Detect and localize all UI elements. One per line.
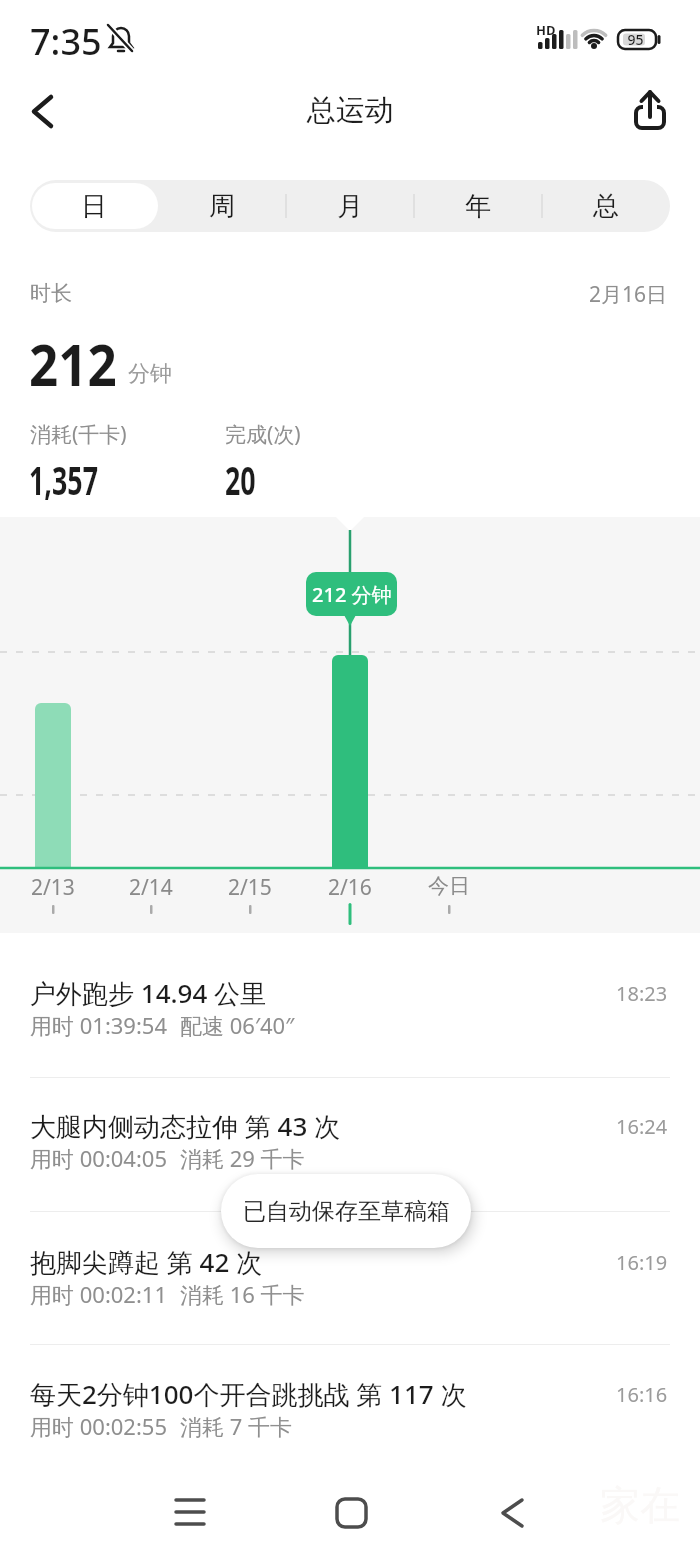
staticText: 总 [593,190,619,223]
button[interactable] [0,1066,700,1200]
button[interactable] [0,1202,700,1336]
staticText: 月 [337,190,363,223]
staticText: 已自动保存至草稿箱 [243,1197,450,1226]
staticText: 2月16日 [589,280,668,309]
staticText: 2/13 [31,873,75,902]
staticText: 总运动 [307,92,394,129]
staticText: 消耗 29 千卡 [180,1143,305,1173]
staticText: HD [536,21,556,39]
staticText: 16:19 [616,1249,668,1276]
staticText: 212 [29,324,117,403]
staticText: 16:24 [616,1113,668,1140]
button[interactable]: 年 [414,180,542,232]
staticText: 2/14 [129,873,173,902]
button[interactable] [0,933,700,1067]
staticText: 抱脚尖蹲起 第 42 次 [30,1244,263,1280]
staticText: 户外跑步 14.94 公里 [30,975,267,1011]
staticText: 分钟 [128,360,172,388]
button[interactable]: 总 [542,180,670,232]
button[interactable] [160,1480,220,1550]
button[interactable]: 日 [30,180,158,232]
button[interactable] [320,1480,380,1550]
staticText: 消耗 7 千卡 [180,1411,293,1441]
staticText: 大腿内侧动态拉伸 第 43 次 [30,1108,341,1144]
staticText: 16:16 [616,1381,668,1408]
button[interactable] [480,1480,540,1550]
staticText: 今日 [428,873,470,899]
staticText: 日 [81,190,107,223]
staticText: 212 分钟 [312,581,392,608]
staticText: 20 [225,452,256,506]
staticText: 消耗(千卡) [30,420,127,449]
staticText: 年 [465,190,491,223]
button[interactable] [20,85,70,140]
staticText: 1,357 [29,452,98,506]
staticText: 用时 00:02:11 [30,1279,168,1309]
button[interactable] [626,82,676,138]
staticText: 用时 00:02:55 [30,1411,168,1441]
staticText: 消耗 16 千卡 [180,1279,305,1309]
staticText: 家在 [600,1480,680,1530]
staticText: 18:23 [616,980,668,1007]
button[interactable]: 周 [158,180,286,232]
staticText: 用时 00:04:05 [30,1143,168,1173]
button[interactable]: 月 [286,180,414,232]
button[interactable] [0,1334,700,1468]
staticText: 时长 [30,280,72,306]
staticText: 2/15 [228,873,272,902]
staticText: 用时 01:39:54 [30,1010,168,1040]
staticText: 2/16 [328,873,372,902]
staticText: 每天2分钟100个开合跳挑战 第 117 次 [30,1376,467,1412]
staticText: 周 [209,190,235,223]
staticText: 95 [627,30,644,49]
staticText: 7:35 [30,17,102,66]
staticText: 完成(次) [225,420,301,449]
staticText: 配速 06′40″ [180,1010,295,1040]
